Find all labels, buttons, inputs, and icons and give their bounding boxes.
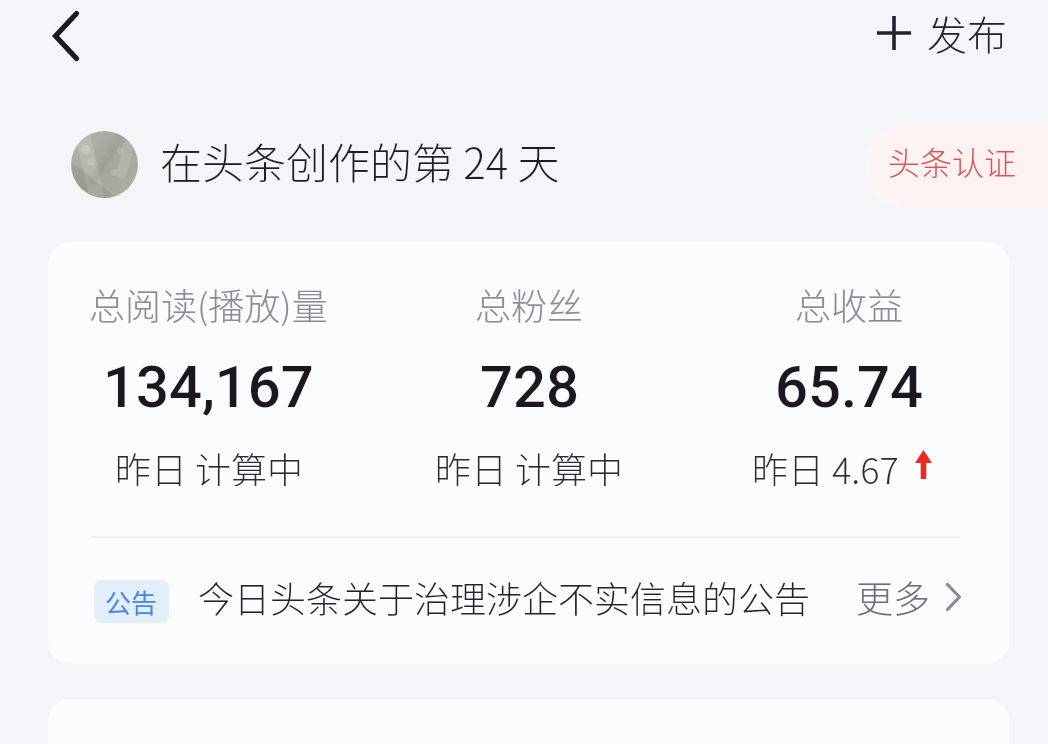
staticText: 总粉丝 (475, 278, 584, 326)
staticText: 在头条创作的第 24 天 (160, 130, 560, 191)
staticText: 今日头条关于治理涉企不实信息的公告 (198, 571, 811, 623)
button[interactable]: Profile avatar (71, 131, 138, 198)
staticText: 公告 (105, 583, 158, 621)
staticText: 昨日 计算中 (435, 442, 623, 486)
staticText: 总收益 (795, 278, 904, 326)
staticText: 134,167 (103, 353, 314, 421)
staticText: 65.74 (775, 353, 923, 421)
staticText: 总阅读(播放)量 (89, 278, 328, 326)
button[interactable]: 总收益 (689, 242, 1009, 540)
button[interactable]: 头条认证 (864, 126, 1048, 208)
button[interactable]: 公告 (48, 535, 1009, 658)
staticText: 728 (480, 353, 579, 421)
button[interactable]: Back (28, 0, 104, 74)
button[interactable]: 发布 (877, 4, 1007, 62)
staticText: 更多 (856, 570, 930, 624)
staticText: 昨日 计算中 (115, 442, 303, 486)
staticText: 昨日 4.67 (752, 442, 899, 486)
button[interactable]: 总阅读(播放)量 (48, 242, 369, 540)
button[interactable]: 总粉丝 (369, 242, 689, 540)
staticText: 发布 (927, 4, 1007, 62)
staticText: 头条认证 (888, 138, 1017, 184)
button[interactable]: 在头条创作的第 24 天 (160, 127, 560, 193)
